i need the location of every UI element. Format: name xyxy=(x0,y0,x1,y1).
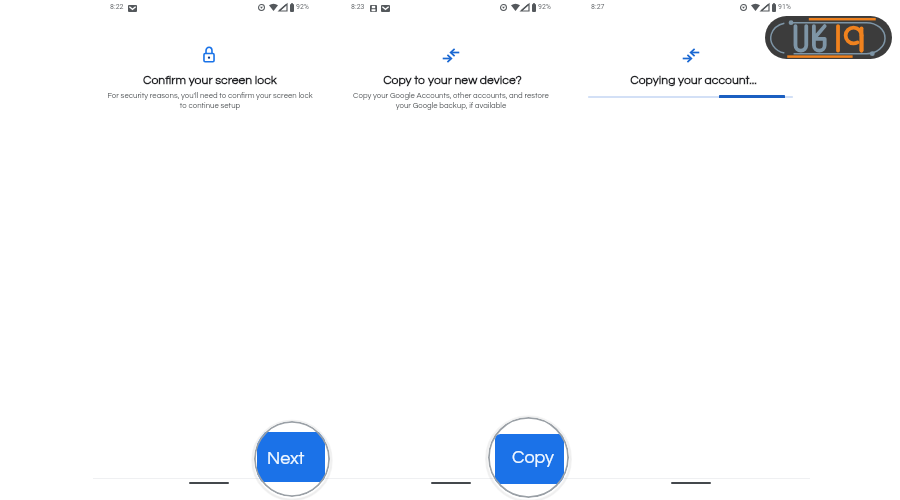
other: Copy to new device xyxy=(442,48,460,63)
button[interactable]: Copy xyxy=(488,417,569,498)
staticText: Copy to your new device? xyxy=(383,74,522,87)
staticText: 8:22 xyxy=(110,3,124,11)
staticText: Copy your Google Accounts, other account… xyxy=(353,92,549,110)
staticText: 92% xyxy=(538,3,551,11)
staticText: Copy xyxy=(512,448,555,467)
other: Screen lock xyxy=(200,45,218,64)
staticText: 92% xyxy=(296,3,309,11)
staticText: Copying your account... xyxy=(630,74,757,87)
staticText: Next xyxy=(267,449,305,468)
staticText: 91% xyxy=(778,3,791,11)
staticText: 8:23 xyxy=(351,3,365,11)
staticText: For security reasons, you'll need to con… xyxy=(107,92,313,110)
other: Copy to new device xyxy=(682,48,700,63)
staticText: Confirm your screen lock xyxy=(143,74,277,87)
staticText: 8:27 xyxy=(591,3,605,11)
button[interactable]: Next xyxy=(254,421,330,497)
